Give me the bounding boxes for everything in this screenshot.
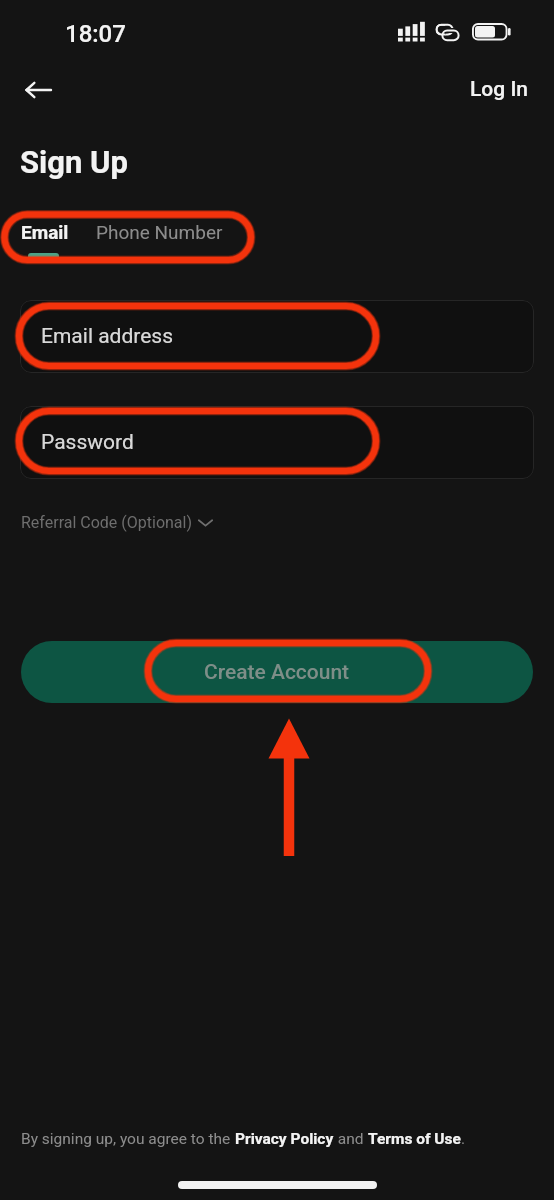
button[interactable]: Back (12, 64, 64, 116)
staticText: By signing up, you agree to the (21, 1130, 235, 1148)
staticText: Sign Up (20, 144, 128, 180)
button[interactable]: Referral Code (Optional) (14, 506, 220, 539)
button[interactable]: Email address (20, 300, 534, 373)
button[interactable]: Email (9, 213, 81, 251)
staticText: Log In (470, 77, 529, 102)
staticText: and (334, 1130, 368, 1148)
staticText: Password (41, 430, 134, 455)
staticText: Referral Code (Optional) (21, 513, 193, 532)
button[interactable]: Password (20, 406, 534, 479)
button[interactable]: Phone Number (84, 213, 235, 251)
staticText: Terms of Use (368, 1130, 461, 1148)
staticText: 18:07 (65, 20, 126, 48)
staticText: Privacy Policy (235, 1130, 334, 1148)
button[interactable]: Create Account (21, 641, 533, 703)
button[interactable]: Log In (452, 66, 547, 113)
staticText: Create Account (204, 660, 350, 685)
staticText: Phone Number (96, 221, 223, 243)
button[interactable]: Terms of Use (368, 1130, 461, 1148)
staticText: . (461, 1130, 466, 1148)
button[interactable]: Privacy Policy (235, 1130, 334, 1148)
staticText: Email (21, 221, 69, 243)
staticText: Email address (41, 324, 174, 349)
